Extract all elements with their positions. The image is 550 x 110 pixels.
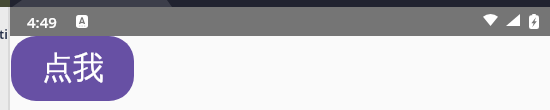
other: Font size <box>76 15 88 28</box>
staticText: 点我 <box>42 48 104 87</box>
other: Mobile signal <box>506 14 520 26</box>
other: Battery charging <box>529 14 539 29</box>
other: Wi-Fi <box>483 14 498 26</box>
button[interactable]: 点我 <box>11 36 134 101</box>
staticText: 4:49 <box>27 12 57 32</box>
staticText: ti <box>0 26 8 42</box>
